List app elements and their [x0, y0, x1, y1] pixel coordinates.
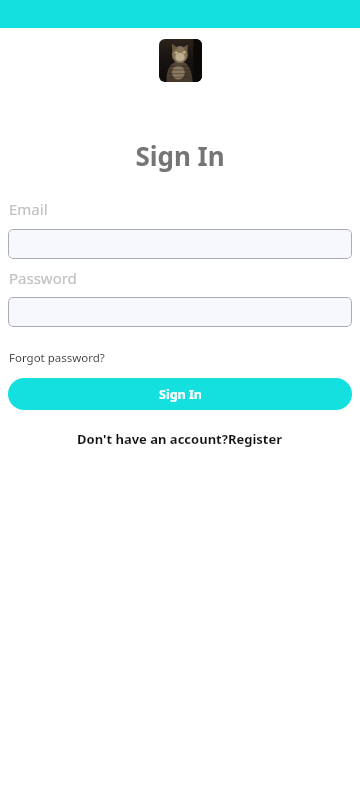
staticText: Password [9, 268, 77, 288]
staticText: Email [9, 199, 48, 219]
staticText: Sign In [159, 386, 202, 403]
button[interactable]: Don't have an account?Register [77, 430, 283, 448]
button[interactable]: Forgot password? [9, 350, 105, 366]
button[interactable]: Sign In [8, 378, 352, 410]
button[interactable]: Password input [8, 297, 352, 327]
button[interactable]: Email input [8, 229, 352, 259]
button[interactable]: Profile photo [159, 39, 202, 82]
staticText: Sign In [0, 138, 360, 173]
staticText: Forgot password? [9, 350, 105, 366]
staticText: Don't have an account?Register [77, 430, 283, 448]
